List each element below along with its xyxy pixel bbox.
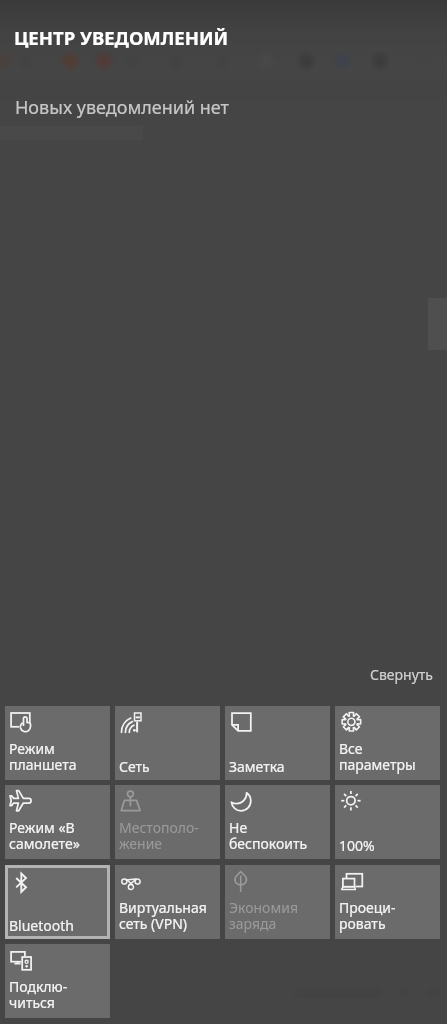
button[interactable]: Режим «В самолете»	[5, 785, 110, 859]
staticText: Все	[339, 739, 363, 758]
staticText: Подклю-	[9, 977, 68, 996]
button[interactable]: Местополо- жение	[115, 785, 220, 859]
staticText: Bluetooth	[9, 916, 74, 935]
staticText: Местополо-	[119, 818, 199, 837]
button[interactable]: Bluetooth	[5, 865, 110, 939]
staticText: Экономия	[229, 898, 298, 917]
button[interactable]: 100%	[335, 785, 440, 859]
button[interactable]: Режим планшета	[5, 706, 110, 780]
staticText: Заметка	[229, 757, 285, 776]
button[interactable]: Не беспокоить	[225, 785, 330, 859]
staticText: Режим	[9, 739, 55, 758]
staticText: ЦЕНТР УВЕДОМЛЕНИЙ	[14, 25, 229, 50]
staticText: параметры	[339, 755, 416, 774]
staticText: Режим «В	[9, 818, 75, 837]
staticText: беспокоить	[229, 834, 308, 853]
staticText: жение	[119, 834, 163, 853]
staticText: Виртуальная	[119, 898, 207, 917]
staticText: Сеть	[119, 757, 150, 776]
staticText: сеть (VPN)	[119, 914, 188, 933]
staticText: Не	[229, 818, 248, 837]
button[interactable]: Виртуальная сеть (VPN)	[115, 865, 220, 939]
staticText: планшета	[9, 755, 77, 774]
button[interactable]: Проеци- ровать	[335, 865, 440, 939]
button[interactable]: Подклю- читься	[5, 944, 110, 1018]
button[interactable]: Заметка	[225, 706, 330, 780]
button[interactable]: Свернуть	[362, 661, 442, 687]
staticText: читься	[9, 993, 55, 1012]
button[interactable]: Экономия заряда	[225, 865, 330, 939]
staticText: Свернуть	[370, 665, 433, 684]
staticText: Проеци-	[339, 898, 396, 917]
staticText: заряда	[229, 914, 277, 933]
staticText: ровать	[339, 914, 386, 933]
staticText: самолете»	[9, 834, 80, 853]
button[interactable]: Сеть	[115, 706, 220, 780]
staticText: 100%	[339, 836, 375, 855]
button[interactable]: Все параметры	[335, 706, 440, 780]
staticText: Новых уведомлений нет	[15, 95, 229, 120]
